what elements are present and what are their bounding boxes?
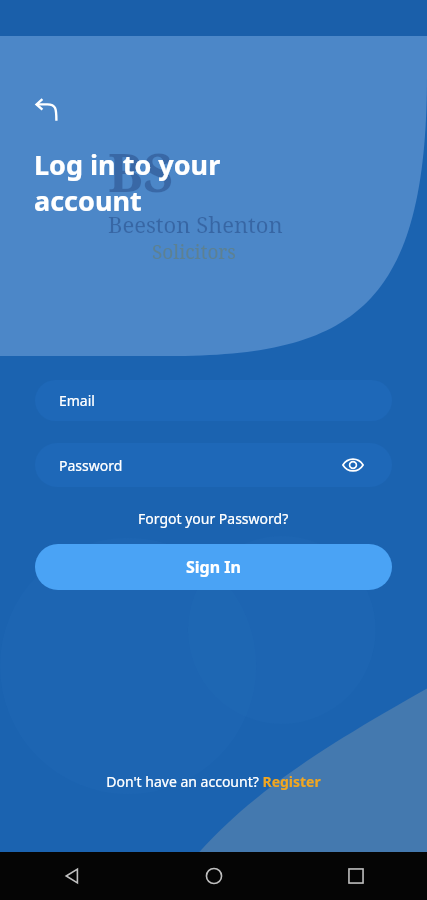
staticText: Don't have an account? Register: [106, 772, 321, 791]
button[interactable]: Password: [35, 443, 392, 487]
staticText: Beeston Shenton: [108, 209, 283, 239]
button[interactable]: Back: [0, 852, 143, 900]
staticText: Sign In: [186, 556, 241, 578]
staticText: Forgot your Password?: [138, 509, 289, 528]
button[interactable]: Recent apps: [285, 852, 427, 900]
staticText: Log in to your account: [34, 146, 221, 219]
button[interactable]: Home: [143, 852, 285, 900]
button[interactable]: Back: [24, 86, 72, 134]
button[interactable]: Sign In: [35, 544, 392, 590]
staticText: Password: [59, 456, 123, 475]
staticText: BS: [108, 136, 174, 207]
button[interactable]: Show password: [338, 450, 368, 480]
staticText: Solicitors: [152, 239, 236, 265]
button[interactable]: Email: [35, 380, 392, 421]
button[interactable]: Don't have an account? Register: [98, 768, 329, 795]
button[interactable]: Forgot your Password?: [134, 505, 293, 532]
staticText: Email: [59, 391, 95, 410]
